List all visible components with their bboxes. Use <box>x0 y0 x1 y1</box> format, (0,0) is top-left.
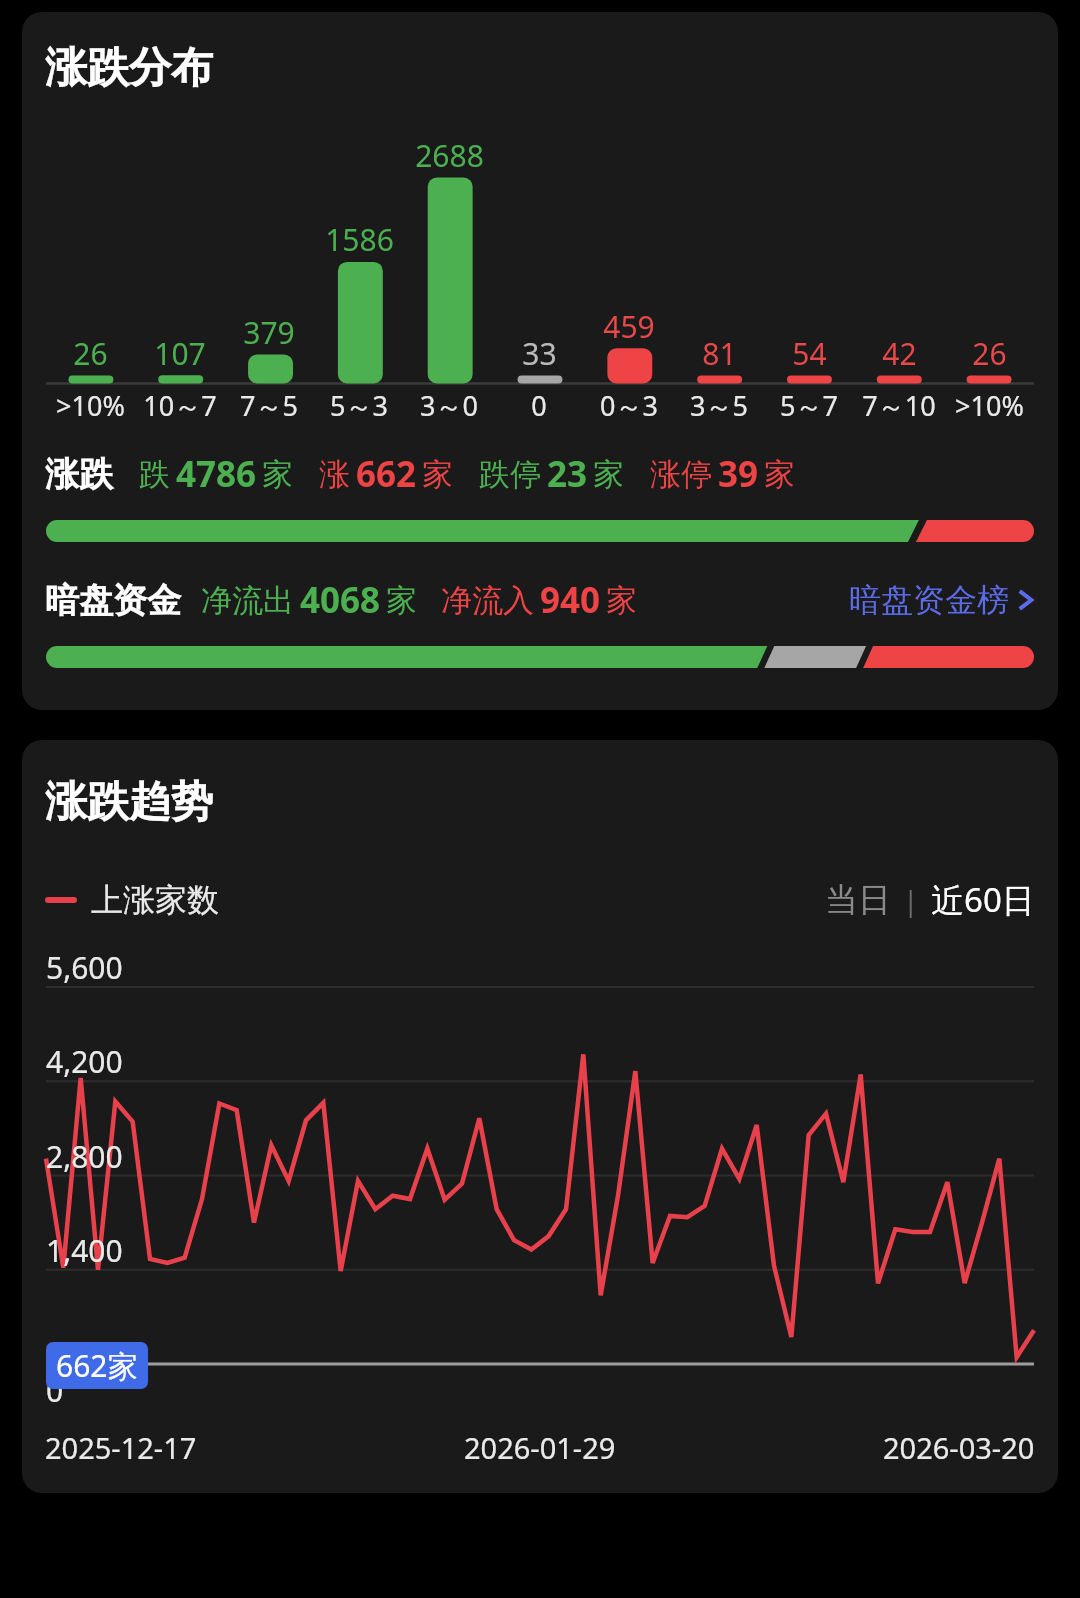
staticText: 涨跌 <box>45 453 113 496</box>
staticText: 5～7 <box>780 387 838 424</box>
staticText: | <box>903 881 919 919</box>
staticText: 净流出 <box>201 581 294 620</box>
staticText: >10% <box>56 387 125 424</box>
staticText: 940 <box>540 576 601 624</box>
staticText: 当日 <box>825 879 891 921</box>
staticText: 4,200 <box>46 1041 123 1082</box>
staticText: 662 <box>356 450 417 498</box>
staticText: 23 <box>547 450 588 498</box>
staticText: 2026-01-29 <box>464 1428 616 1467</box>
staticText: 33 <box>522 333 557 374</box>
staticText: 涨停 <box>650 455 712 494</box>
staticText: 近60日 <box>931 877 1035 922</box>
staticText: 4786 <box>176 450 257 498</box>
staticText: 2,800 <box>46 1136 123 1177</box>
staticText: 81 <box>702 333 737 374</box>
staticText: 0 <box>531 387 547 424</box>
staticText: 3～5 <box>690 387 748 424</box>
staticText: 家 <box>764 455 795 494</box>
staticText: 涨跌趋势 <box>45 776 213 829</box>
staticText: 42 <box>882 333 917 374</box>
staticText: >10% <box>955 387 1024 424</box>
staticText: 2688 <box>415 135 484 176</box>
staticText: 7～10 <box>862 387 936 424</box>
staticText: 净流入 <box>441 581 534 620</box>
button[interactable]: 暗盘资金榜 <box>849 580 1035 620</box>
staticText: 3～0 <box>420 387 478 424</box>
staticText: 涨跌分布 <box>45 42 213 95</box>
staticText: 家 <box>262 455 293 494</box>
staticText: 39 <box>718 450 759 498</box>
staticText: 459 <box>603 306 655 347</box>
staticText: 10～7 <box>143 387 217 424</box>
staticText: 5,600 <box>46 947 123 988</box>
button[interactable]: 当日 <box>825 879 891 921</box>
staticText: 跌 <box>139 455 170 494</box>
staticText: 暗盘资金 <box>45 579 181 622</box>
staticText: 26 <box>73 333 108 374</box>
staticText: 5～3 <box>330 387 388 424</box>
staticText: 379 <box>243 312 295 353</box>
staticText: 涨 <box>319 455 350 494</box>
button[interactable]: 涨跌 <box>22 450 1058 498</box>
staticText: 662家 <box>56 1345 138 1386</box>
staticText: 家 <box>606 581 637 620</box>
staticText: 上涨家数 <box>91 880 219 920</box>
staticText: 家 <box>422 455 453 494</box>
staticText: 4068 <box>300 576 381 624</box>
staticText: 0～3 <box>600 387 658 424</box>
staticText: 54 <box>792 333 827 374</box>
staticText: 家 <box>386 581 417 620</box>
staticText: 7～5 <box>240 387 298 424</box>
staticText: 2026-03-20 <box>883 1428 1035 1467</box>
staticText: 暗盘资金榜 <box>849 580 1009 620</box>
staticText: 家 <box>593 455 624 494</box>
staticText: 跌停 <box>479 455 541 494</box>
staticText: 2025-12-17 <box>45 1428 197 1467</box>
staticText: 26 <box>972 333 1007 374</box>
staticText: 0 <box>46 1370 64 1411</box>
staticText: 107 <box>154 333 206 374</box>
staticText: 1586 <box>325 219 394 260</box>
button[interactable]: 近60日 <box>931 877 1035 922</box>
staticText: 1,400 <box>46 1230 123 1271</box>
